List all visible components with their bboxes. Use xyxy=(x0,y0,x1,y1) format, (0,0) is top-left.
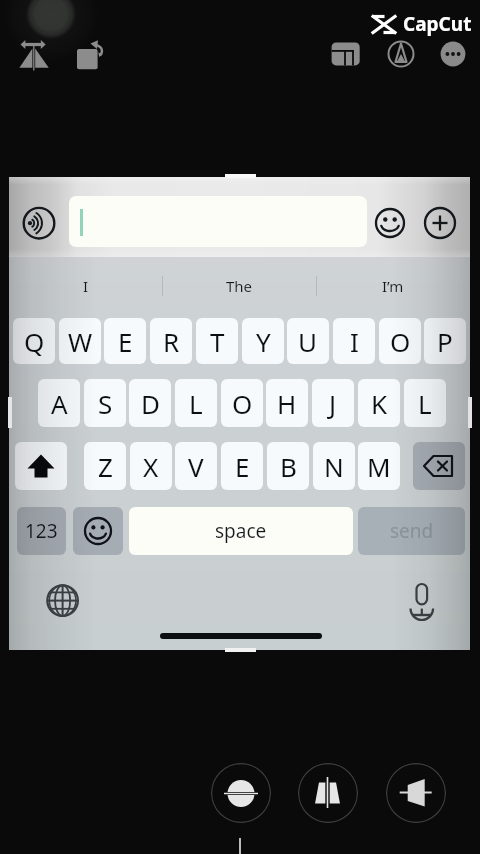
button[interactable]: U xyxy=(287,318,329,364)
button[interactable]: I’m xyxy=(316,265,470,307)
button[interactable]: Layout xyxy=(326,36,366,72)
button[interactable]: Flip horizontal xyxy=(386,763,446,823)
button[interactable]: Z xyxy=(84,442,126,490)
button[interactable]: L xyxy=(404,379,446,427)
staticText: M xyxy=(367,449,391,484)
button[interactable]: M xyxy=(358,442,400,490)
staticText: D xyxy=(141,386,160,421)
button[interactable]: Change keyboard xyxy=(46,584,80,618)
staticText: space xyxy=(215,518,267,544)
button[interactable]: X xyxy=(130,442,172,490)
staticText: Y xyxy=(256,324,271,359)
button[interactable]: W xyxy=(59,318,101,364)
staticText: B xyxy=(280,449,297,484)
button[interactable]: O xyxy=(221,379,263,427)
button[interactable]: Mirror xyxy=(12,36,56,80)
staticText: O xyxy=(390,324,411,359)
button[interactable]: S xyxy=(84,379,126,427)
staticText: P xyxy=(437,324,453,359)
button[interactable]: A xyxy=(38,379,80,427)
button[interactable]: V xyxy=(175,442,217,490)
staticText: L xyxy=(418,386,432,421)
staticText: send xyxy=(390,518,434,544)
staticText: H xyxy=(277,386,297,421)
button[interactable] xyxy=(69,196,367,247)
button[interactable]: I xyxy=(333,318,375,364)
button[interactable]: Emoji xyxy=(375,208,405,238)
staticText: A xyxy=(51,386,68,421)
button[interactable]: K xyxy=(358,379,400,427)
staticText: J xyxy=(329,386,337,421)
button[interactable]: Mirror horizontal xyxy=(298,763,358,823)
staticText: E xyxy=(235,449,250,484)
staticText: Q xyxy=(24,324,45,359)
button[interactable]: I xyxy=(9,265,162,307)
button[interactable]: Y xyxy=(242,318,284,364)
button[interactable]: L xyxy=(175,379,217,427)
button[interactable]: Rotate xyxy=(70,38,108,76)
button[interactable]: P xyxy=(424,318,466,364)
staticText: I’m xyxy=(382,276,404,296)
staticText: N xyxy=(324,449,344,484)
button[interactable]: T xyxy=(196,318,238,364)
staticText: V xyxy=(188,449,204,484)
button[interactable]: H xyxy=(266,379,308,427)
staticText: R xyxy=(163,324,180,359)
staticText: W xyxy=(68,324,93,359)
button[interactable]: send xyxy=(358,507,465,555)
staticText: I xyxy=(83,276,89,296)
button[interactable]: E xyxy=(104,318,146,364)
button[interactable]: Flip vertical xyxy=(211,763,271,823)
staticText: CapCut xyxy=(403,11,472,37)
button[interactable]: Backspace xyxy=(413,442,465,490)
button[interactable]: D xyxy=(129,379,171,427)
button[interactable]: The xyxy=(162,265,316,307)
staticText: E xyxy=(118,324,133,359)
button[interactable]: E xyxy=(221,442,263,490)
staticText: K xyxy=(371,386,388,421)
staticText: Z xyxy=(98,449,113,484)
staticText: The xyxy=(226,276,253,296)
button[interactable]: O xyxy=(379,318,421,364)
staticText: L xyxy=(189,386,203,421)
button[interactable]: Add xyxy=(424,207,456,239)
button[interactable]: Q xyxy=(13,318,55,364)
button[interactable]: B xyxy=(267,442,309,490)
button[interactable]: Audio message xyxy=(23,207,55,239)
button[interactable]: J xyxy=(312,379,354,427)
staticText: U xyxy=(298,324,318,359)
button[interactable]: Edit xyxy=(387,40,415,68)
staticText: O xyxy=(232,386,253,421)
staticText: I xyxy=(350,324,359,359)
button[interactable]: Voice input xyxy=(404,577,444,621)
staticText: T xyxy=(210,324,225,359)
button[interactable]: More options xyxy=(440,41,466,67)
button[interactable]: 123 xyxy=(17,507,66,555)
staticText: 123 xyxy=(25,518,58,544)
button[interactable]: Shift xyxy=(15,442,67,490)
staticText: S xyxy=(98,386,113,421)
staticText: X xyxy=(143,449,159,484)
button[interactable]: R xyxy=(150,318,192,364)
button[interactable]: Emoji keyboard xyxy=(73,507,123,555)
button[interactable]: space xyxy=(129,507,353,555)
button[interactable]: N xyxy=(313,442,355,490)
